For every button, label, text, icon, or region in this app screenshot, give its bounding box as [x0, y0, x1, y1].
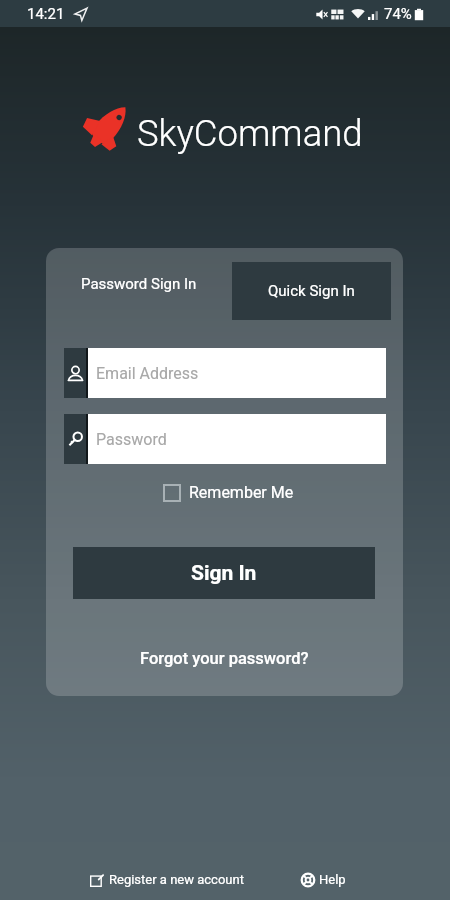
button[interactable]: Sign In	[73, 547, 375, 599]
staticText: Password	[96, 430, 167, 449]
staticText: Help	[319, 872, 346, 887]
button[interactable]: Quick Sign In	[232, 262, 391, 320]
other: Help	[301, 873, 315, 887]
staticText: SkyCommand	[137, 112, 363, 155]
button[interactable]: Forgot your password?	[134, 644, 315, 673]
other: Register a new account	[90, 873, 104, 887]
staticText: Sign In	[191, 561, 257, 586]
staticText: Quick Sign In	[268, 282, 355, 300]
staticText: 14:21	[27, 5, 65, 23]
staticText: Email Address	[96, 364, 199, 383]
staticText: Forgot your password?	[140, 649, 309, 668]
staticText: Register a new account	[109, 872, 244, 887]
staticText: Remember Me	[189, 483, 294, 502]
button[interactable]: Register a new account	[84, 867, 250, 892]
button[interactable]: Help	[295, 867, 352, 892]
staticText: 74%	[384, 5, 412, 23]
button[interactable]: Password Sign In	[46, 248, 232, 320]
staticText: Password Sign In	[81, 275, 197, 293]
button[interactable]: Remember Me	[160, 479, 297, 506]
